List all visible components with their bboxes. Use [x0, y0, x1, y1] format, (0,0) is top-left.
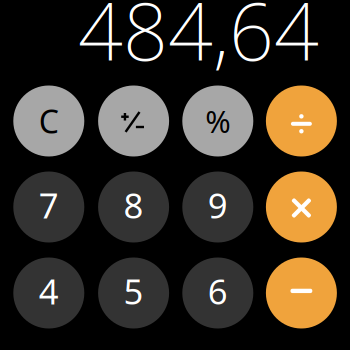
staticText: C	[39, 100, 59, 142]
button[interactable]: Clear	[13, 85, 84, 156]
staticText: 8	[124, 182, 144, 228]
staticText: %	[205, 101, 230, 141]
button[interactable]: 7	[13, 171, 84, 242]
staticText: 4	[39, 268, 59, 314]
button[interactable]: 4	[13, 257, 84, 328]
staticText: 9	[208, 182, 228, 228]
staticText: 484,64	[78, 0, 319, 82]
button[interactable]: 6	[182, 257, 253, 328]
staticText: 6	[208, 268, 228, 314]
staticText: 7	[39, 182, 59, 228]
button[interactable]: 9	[182, 171, 253, 242]
button[interactable]: Divide	[266, 85, 337, 156]
staticText: 5	[124, 268, 144, 314]
button[interactable]: Multiply	[266, 171, 337, 242]
button[interactable]: 8	[98, 171, 169, 242]
button[interactable]: Percent	[182, 85, 253, 156]
button[interactable]: 5	[98, 257, 169, 328]
button[interactable]: Plus minus	[98, 85, 169, 156]
button[interactable]: Subtract	[266, 257, 337, 328]
